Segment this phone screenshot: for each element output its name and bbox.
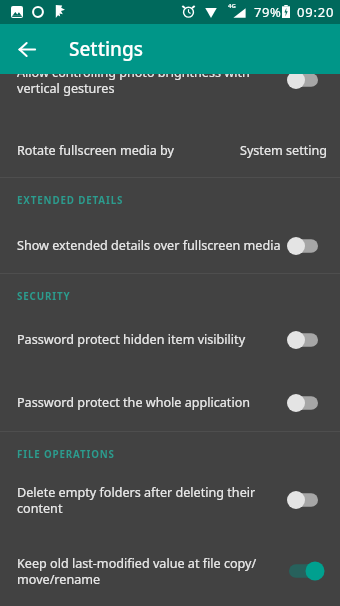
- staticText: Keep old last-modified value at file cop…: [17, 555, 257, 587]
- staticText: Password protect the whole application: [17, 394, 251, 411]
- staticText: EXTENDED DETAILS: [17, 194, 124, 207]
- staticText: Rotate fullscreen media by: [17, 142, 175, 159]
- staticText: 4G: [228, 2, 236, 10]
- staticText: Settings: [69, 36, 143, 62]
- button[interactable]: Password protect hidden item visibility: [0, 317, 340, 362]
- button[interactable]: Password protect the whole application: [0, 380, 340, 425]
- staticText: System setting: [240, 142, 328, 159]
- staticText: Password protect hidden item visibility: [17, 331, 246, 348]
- staticText: SECURITY: [17, 290, 71, 303]
- button[interactable]: Keep old last-modified value at file cop…: [0, 548, 340, 593]
- button[interactable]: Rotate fullscreen media by: [0, 124, 340, 176]
- button[interactable]: Show extended details over fullscreen me…: [0, 220, 340, 271]
- button[interactable]: Back: [4, 26, 50, 72]
- button[interactable]: Allow controlling photo brightness with …: [0, 44, 340, 115]
- staticText: Allow controlling photo brightness with …: [17, 64, 250, 96]
- staticText: FILE OPERATIONS: [17, 448, 115, 461]
- staticText: 79%: [254, 3, 282, 21]
- staticText: Show extended details over fullscreen me…: [17, 237, 281, 254]
- button[interactable]: Delete empty folders after deleting thei…: [0, 477, 340, 522]
- staticText: Delete empty folders after deleting thei…: [17, 484, 256, 516]
- staticText: 09:20: [297, 3, 335, 21]
